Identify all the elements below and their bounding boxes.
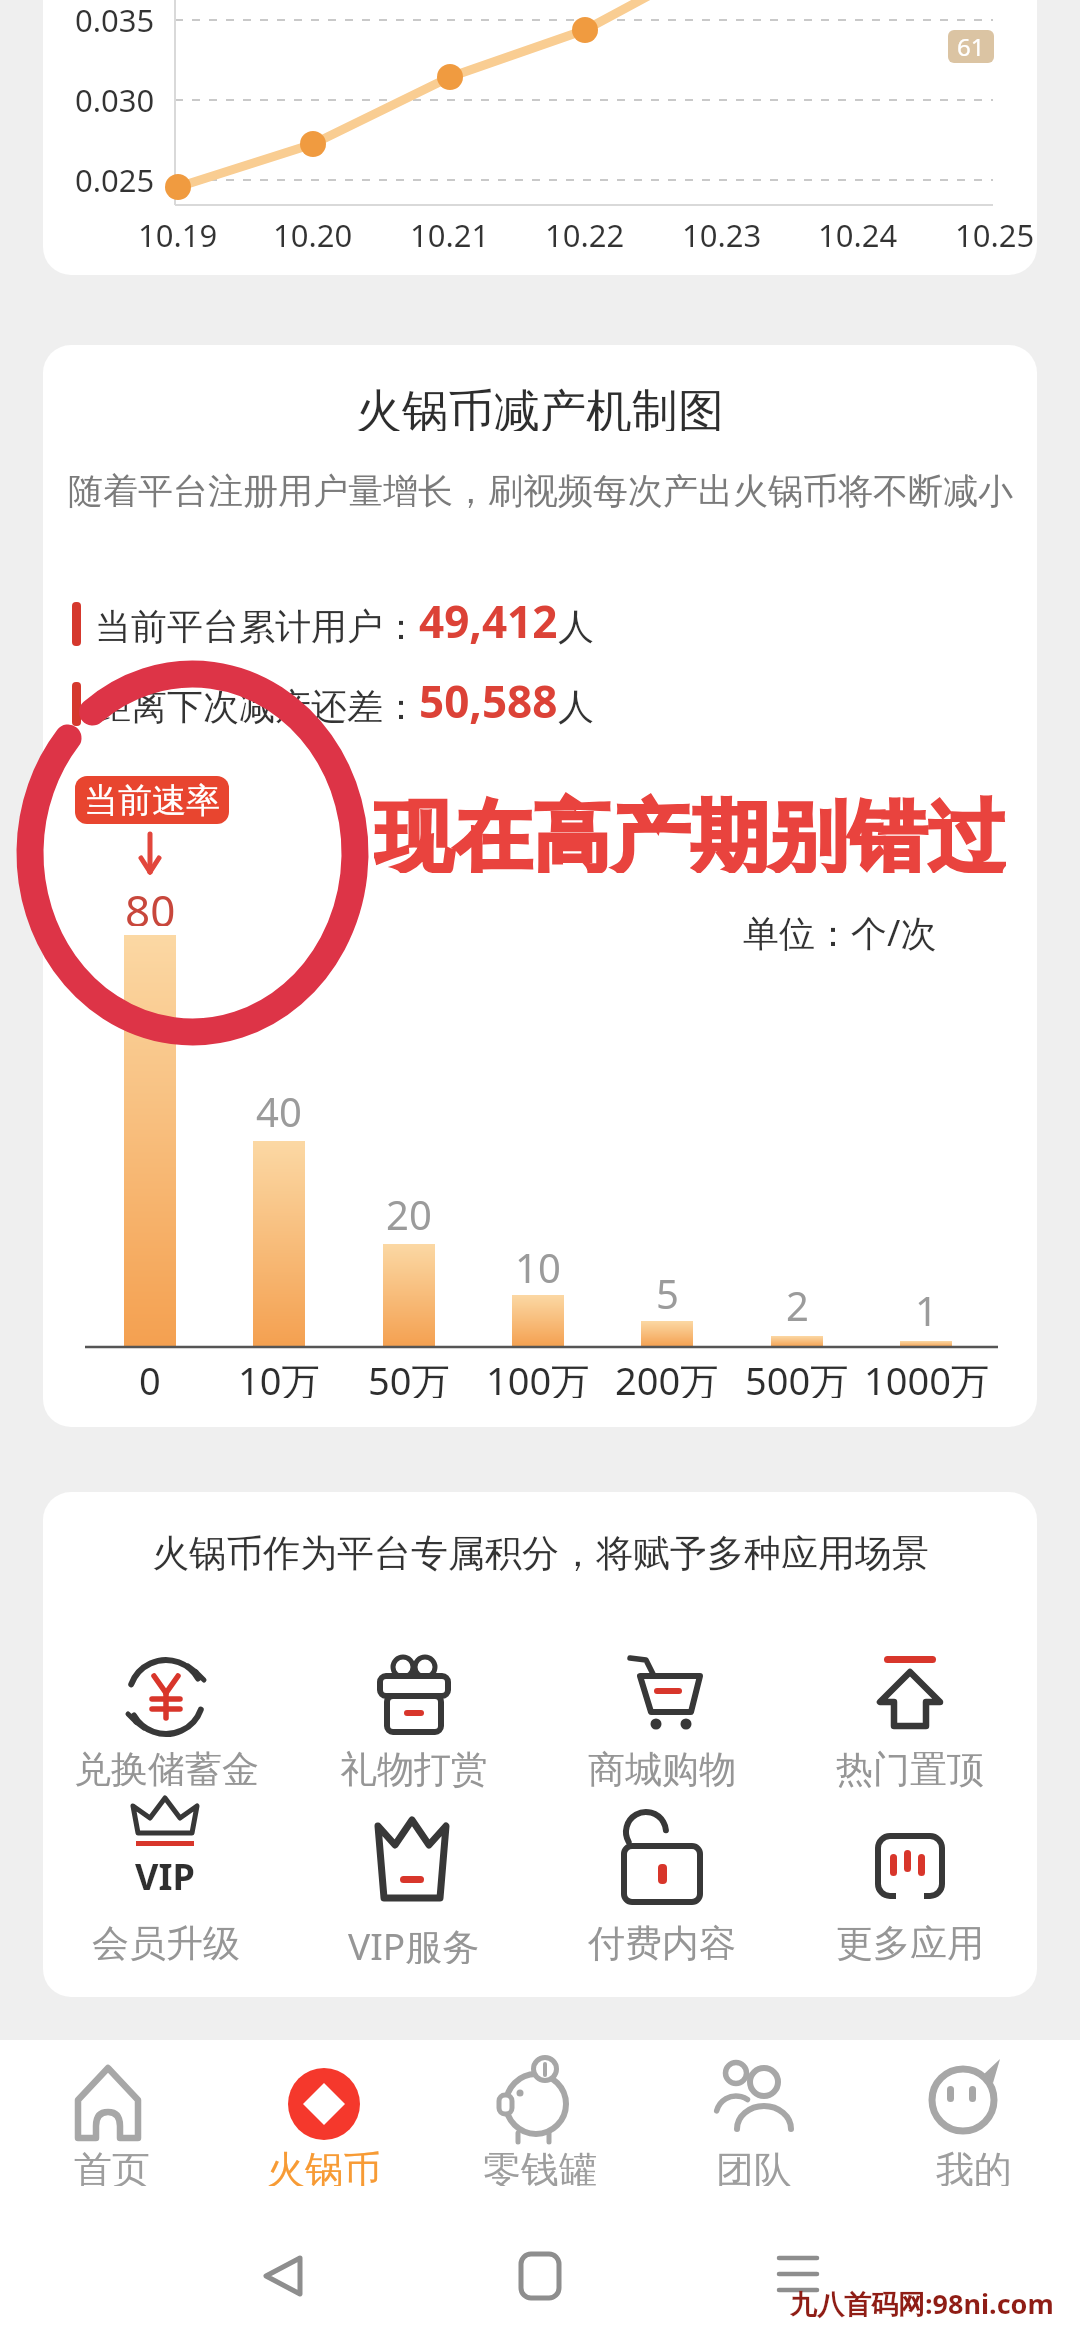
staticText: 当前平台累计用户： <box>95 604 419 649</box>
staticText: 5 <box>656 1266 679 1310</box>
staticText: 随着平台注册用户量增长，刷视频每次产出火锅币将不断减小 <box>68 469 1013 513</box>
staticText: 10.19 <box>138 214 218 256</box>
staticText: 10.20 <box>273 214 353 256</box>
staticText: 0.030 <box>75 79 155 121</box>
staticText: 10.23 <box>682 214 762 256</box>
staticText: VIP <box>135 1852 195 1898</box>
button[interactable] <box>246 2240 318 2312</box>
button[interactable] <box>762 2240 834 2312</box>
staticText: 10.24 <box>818 214 898 256</box>
staticText: 零钱罐 <box>483 2146 597 2186</box>
staticText: 单位：个/次 <box>743 908 937 952</box>
staticText: 40 <box>256 1084 302 1128</box>
staticText: 团队 <box>716 2146 792 2186</box>
staticText: 1 <box>915 1283 938 1327</box>
staticText: 200万 <box>615 1354 719 1398</box>
staticText: 会员升级 <box>92 1920 240 1964</box>
staticText: 10.21 <box>410 214 490 256</box>
staticText: 2 <box>786 1278 809 1322</box>
staticText: 61 <box>957 30 985 63</box>
staticText: 热门置顶 <box>836 1746 984 1790</box>
staticText: 49,412 <box>419 591 558 651</box>
staticText: 我的 <box>936 2146 1012 2186</box>
staticText: 火锅币减产机制图 <box>356 383 724 431</box>
button[interactable] <box>798 1640 1022 1796</box>
staticText: 80 <box>125 880 176 926</box>
button[interactable] <box>236 2048 412 2192</box>
staticText: 距离下次减产还差： <box>95 684 419 729</box>
staticText: 火锅币 <box>267 2146 381 2186</box>
staticText: 50,588 <box>419 671 558 731</box>
button[interactable] <box>20 2048 196 2192</box>
staticText: 10万 <box>238 1354 320 1398</box>
staticText: 更多应用 <box>836 1920 984 1964</box>
staticText: VIP服务 <box>348 1920 480 1964</box>
button[interactable] <box>54 1812 278 1968</box>
staticText: 10 <box>515 1240 561 1284</box>
staticText: 100万 <box>486 1354 590 1398</box>
button[interactable]: 当前速率 <box>75 776 229 824</box>
staticText: 首页 <box>74 2146 150 2186</box>
staticText: 商城购物 <box>588 1746 736 1790</box>
staticText: 0.035 <box>75 0 155 41</box>
button[interactable] <box>882 2048 1058 2192</box>
staticText: 0 <box>139 1354 161 1398</box>
button[interactable] <box>302 1812 526 1968</box>
staticText: 现在高产期别错过 <box>374 789 1006 873</box>
button[interactable] <box>504 2240 576 2312</box>
staticText: 0.025 <box>75 159 155 201</box>
staticText: 兑换储蓄金 <box>74 1746 259 1790</box>
staticText: 礼物打赏 <box>340 1746 488 1790</box>
button[interactable] <box>302 1640 526 1796</box>
button[interactable] <box>798 1812 1022 1968</box>
button[interactable] <box>550 1812 774 1968</box>
staticText: 10.22 <box>545 214 625 256</box>
staticText: 人 <box>558 604 594 649</box>
staticText: 20 <box>386 1187 432 1231</box>
button[interactable] <box>54 1640 278 1796</box>
button[interactable] <box>452 2048 628 2192</box>
button[interactable] <box>668 2048 844 2192</box>
staticText: 付费内容 <box>588 1920 736 1964</box>
staticText: 50万 <box>368 1354 450 1398</box>
staticText: 10.25 <box>955 214 1035 256</box>
staticText: 500万 <box>745 1354 849 1398</box>
button[interactable] <box>550 1640 774 1796</box>
staticText: 人 <box>558 684 594 729</box>
staticText: 1000万 <box>864 1354 989 1398</box>
staticText: 九八首码网:98ni.com <box>790 2285 1054 2319</box>
staticText: 火锅币作为平台专属积分，将赋予多种应用场景 <box>152 1530 929 1577</box>
staticText: 当前速率 <box>84 779 220 822</box>
